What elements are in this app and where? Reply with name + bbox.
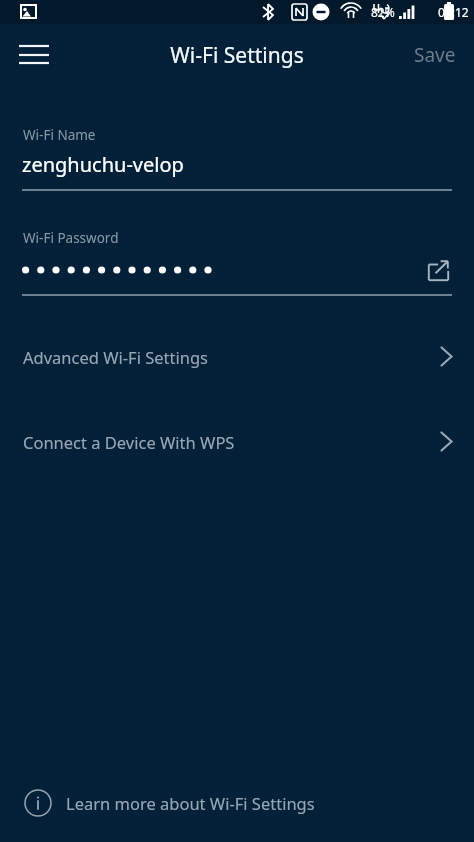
staticText: Advanced Wi-Fi Settings [23, 346, 208, 368]
staticText: Wi-Fi Settings [170, 41, 304, 70]
staticText: 82% [371, 4, 395, 20]
button[interactable]: Menu [8, 29, 60, 81]
button[interactable]: Connect a Device With WPS [0, 399, 474, 484]
button[interactable]: Share Wi-Fi password [416, 257, 460, 283]
button[interactable]: Advanced Wi-Fi Settings [0, 314, 474, 399]
staticText: Connect a Device With WPS [23, 431, 235, 453]
staticText: Wi-Fi Name [23, 126, 96, 144]
staticText: Save [414, 42, 456, 68]
staticText: Wi-Fi Password [23, 229, 119, 247]
staticText: zenghuchu-velop [22, 151, 184, 178]
staticText: 00:12 [438, 4, 469, 20]
button[interactable]: Learn more about Wi-Fi Settings [0, 764, 474, 842]
button[interactable]: Save [406, 32, 464, 78]
staticText: Learn more about Wi-Fi Settings [66, 792, 315, 814]
